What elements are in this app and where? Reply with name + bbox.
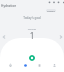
staticText: Today's goal [0, 16, 64, 20]
button[interactable]: Weekly [46, 9, 56, 12]
button[interactable]: Add glass [29, 55, 35, 61]
staticText: 1 [0, 30, 64, 41]
button[interactable]: Home [6, 61, 14, 69]
button[interactable]: Stats [21, 61, 29, 69]
staticText: Weekly [47, 9, 55, 12]
staticText: Hydration [1, 4, 17, 8]
button[interactable]: Profile [50, 61, 58, 69]
button[interactable]: Next [57, 33, 64, 40]
button[interactable]: Plan [35, 61, 43, 69]
staticText: Glasses [0, 27, 64, 30]
button[interactable]: Previous [0, 33, 7, 40]
